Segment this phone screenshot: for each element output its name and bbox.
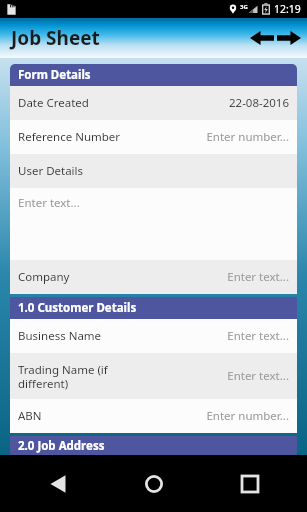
staticText: Trading Name (if different)	[18, 362, 227, 391]
button[interactable]: 2.0 Job Address	[10, 436, 297, 455]
button[interactable]: Next	[275, 25, 302, 51]
button[interactable]: User Details	[10, 154, 297, 188]
button[interactable]: Reference Number	[10, 120, 297, 154]
staticText: Enter number...	[206, 129, 289, 145]
staticText: Enter text...	[227, 368, 289, 384]
staticText: Date Created	[18, 95, 228, 111]
staticText: Reference Number	[18, 129, 206, 145]
staticText: ABN	[18, 408, 206, 424]
staticText: 2.0 Job Address	[18, 438, 105, 454]
staticText: User Details	[18, 163, 289, 179]
staticText: Enter text...	[227, 269, 289, 285]
button[interactable]: ABN	[10, 399, 297, 433]
staticText: Business Name	[18, 328, 227, 344]
staticText: 12:19	[274, 2, 301, 16]
button[interactable]: Business Name	[10, 319, 297, 353]
button[interactable]: Trading Name (if different)	[10, 353, 297, 399]
button[interactable]: 1.0 Customer Details	[10, 297, 297, 319]
staticText: 3G	[240, 3, 248, 11]
button[interactable]: Previous	[248, 25, 275, 51]
staticText: Enter text...	[227, 328, 289, 344]
button[interactable]: Back	[37, 463, 79, 505]
staticText: Enter text...	[18, 195, 80, 211]
staticText: Form Details	[18, 67, 91, 83]
button[interactable]: Date Created	[10, 86, 297, 120]
staticText: Enter number...	[206, 408, 289, 424]
button[interactable]: Enter text...	[10, 188, 297, 260]
staticText: Job Sheet	[11, 25, 100, 51]
button[interactable]: Company	[10, 260, 297, 294]
button[interactable]: Home	[133, 463, 175, 505]
staticText: 22-08-2016	[228, 95, 289, 111]
staticText: 1.0 Customer Details	[18, 300, 137, 316]
button[interactable]: Recent apps	[229, 463, 271, 505]
button[interactable]: Job Sheet	[11, 25, 100, 51]
staticText: Company	[18, 269, 227, 285]
button[interactable]: Form Details	[10, 64, 297, 86]
